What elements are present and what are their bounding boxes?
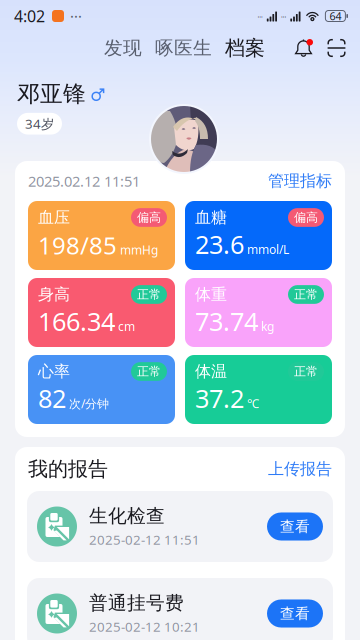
button[interactable]: 上传报告 <box>268 459 332 479</box>
staticText: 2025.02.12 11:51 <box>28 171 140 191</box>
staticText: 查看 <box>280 604 310 622</box>
button[interactable]: 心率 <box>28 355 175 424</box>
button[interactable]: 管理指标 <box>268 171 332 191</box>
staticText: 82 <box>38 381 66 415</box>
staticText: 正常 <box>294 287 318 302</box>
button[interactable]: 身高 <box>28 278 175 347</box>
button[interactable]: 血糖 <box>185 201 332 270</box>
button[interactable]: 档案 <box>225 36 265 60</box>
staticText: 4:02 <box>14 5 45 27</box>
staticText: 偏高 <box>137 210 161 225</box>
staticText: 上传报告 <box>268 459 332 479</box>
button[interactable]: 生化检查 <box>27 491 333 562</box>
staticText: 73.74 <box>195 304 258 338</box>
staticText: 心率 <box>38 362 70 381</box>
staticText: 偏高 <box>294 210 318 225</box>
button[interactable]: 体温 <box>185 355 332 424</box>
staticText: HD <box>257 10 265 19</box>
button[interactable]: 扫一扫 <box>326 38 347 58</box>
staticText: 管理指标 <box>268 171 332 191</box>
staticText: ··· <box>70 6 82 26</box>
staticText: 正常 <box>294 364 318 379</box>
button[interactable]: 普通挂号费 <box>27 578 333 640</box>
staticText: 普通挂号费 <box>89 592 184 615</box>
staticText: 正常 <box>137 287 161 302</box>
staticText: 正常 <box>137 364 161 379</box>
staticText: 啄医生 <box>155 36 212 59</box>
staticText: mmHg <box>120 242 158 258</box>
staticText: 23.6 <box>195 227 244 261</box>
staticText: cm <box>118 318 135 334</box>
staticText: 34岁 <box>25 115 54 132</box>
button[interactable]: 啄医生 <box>155 36 212 59</box>
staticText: kg <box>261 318 274 334</box>
staticText: 体温 <box>195 362 227 381</box>
staticText: 2025-02-12 10:21 <box>89 618 200 635</box>
staticText: 次/分钟 <box>69 396 109 411</box>
staticText: 我的报告 <box>28 457 108 481</box>
button[interactable]: 血压 <box>28 201 175 270</box>
staticText: ℃ <box>247 395 259 411</box>
staticText: HD <box>281 10 289 19</box>
staticText: 发现 <box>104 36 142 59</box>
staticText: 198/85 <box>38 229 117 261</box>
staticText: 血压 <box>38 208 70 227</box>
staticText: 查看 <box>280 517 310 535</box>
staticText: 37.2 <box>195 381 244 415</box>
staticText: mmol/L <box>247 241 289 257</box>
button[interactable]: 体重 <box>185 278 332 347</box>
button[interactable]: 通知 <box>294 38 315 58</box>
staticText: 邓亚锋 <box>17 80 86 108</box>
staticText: 64 <box>329 9 341 23</box>
button[interactable]: 发现 <box>104 36 142 59</box>
staticText: 166.34 <box>38 304 115 338</box>
staticText: 血糖 <box>195 208 227 227</box>
staticText: 档案 <box>225 36 265 60</box>
staticText: 2025-02-12 11:51 <box>89 531 200 548</box>
staticText: 身高 <box>38 285 70 304</box>
staticText: 生化检查 <box>89 505 165 528</box>
staticText: 体重 <box>195 285 227 304</box>
